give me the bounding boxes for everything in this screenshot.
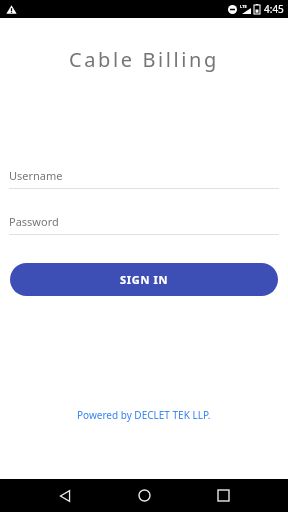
- staticText: SIGN IN: [120, 272, 169, 287]
- staticText: Password: [9, 214, 59, 229]
- staticText: Username: [9, 168, 63, 183]
- button[interactable]: Recent apps: [204, 479, 242, 512]
- staticText: 4:45: [264, 2, 284, 16]
- button[interactable]: Password: [9, 214, 279, 235]
- staticText: LTE: [240, 4, 247, 9]
- button[interactable]: SIGN IN: [10, 263, 278, 296]
- button[interactable]: Username: [9, 168, 279, 189]
- button[interactable]: Home: [125, 479, 163, 512]
- button[interactable]: Powered by DECLET TEK LLP.: [77, 408, 211, 422]
- button[interactable]: Back: [46, 479, 84, 512]
- staticText: Cable Billing: [0, 46, 288, 73]
